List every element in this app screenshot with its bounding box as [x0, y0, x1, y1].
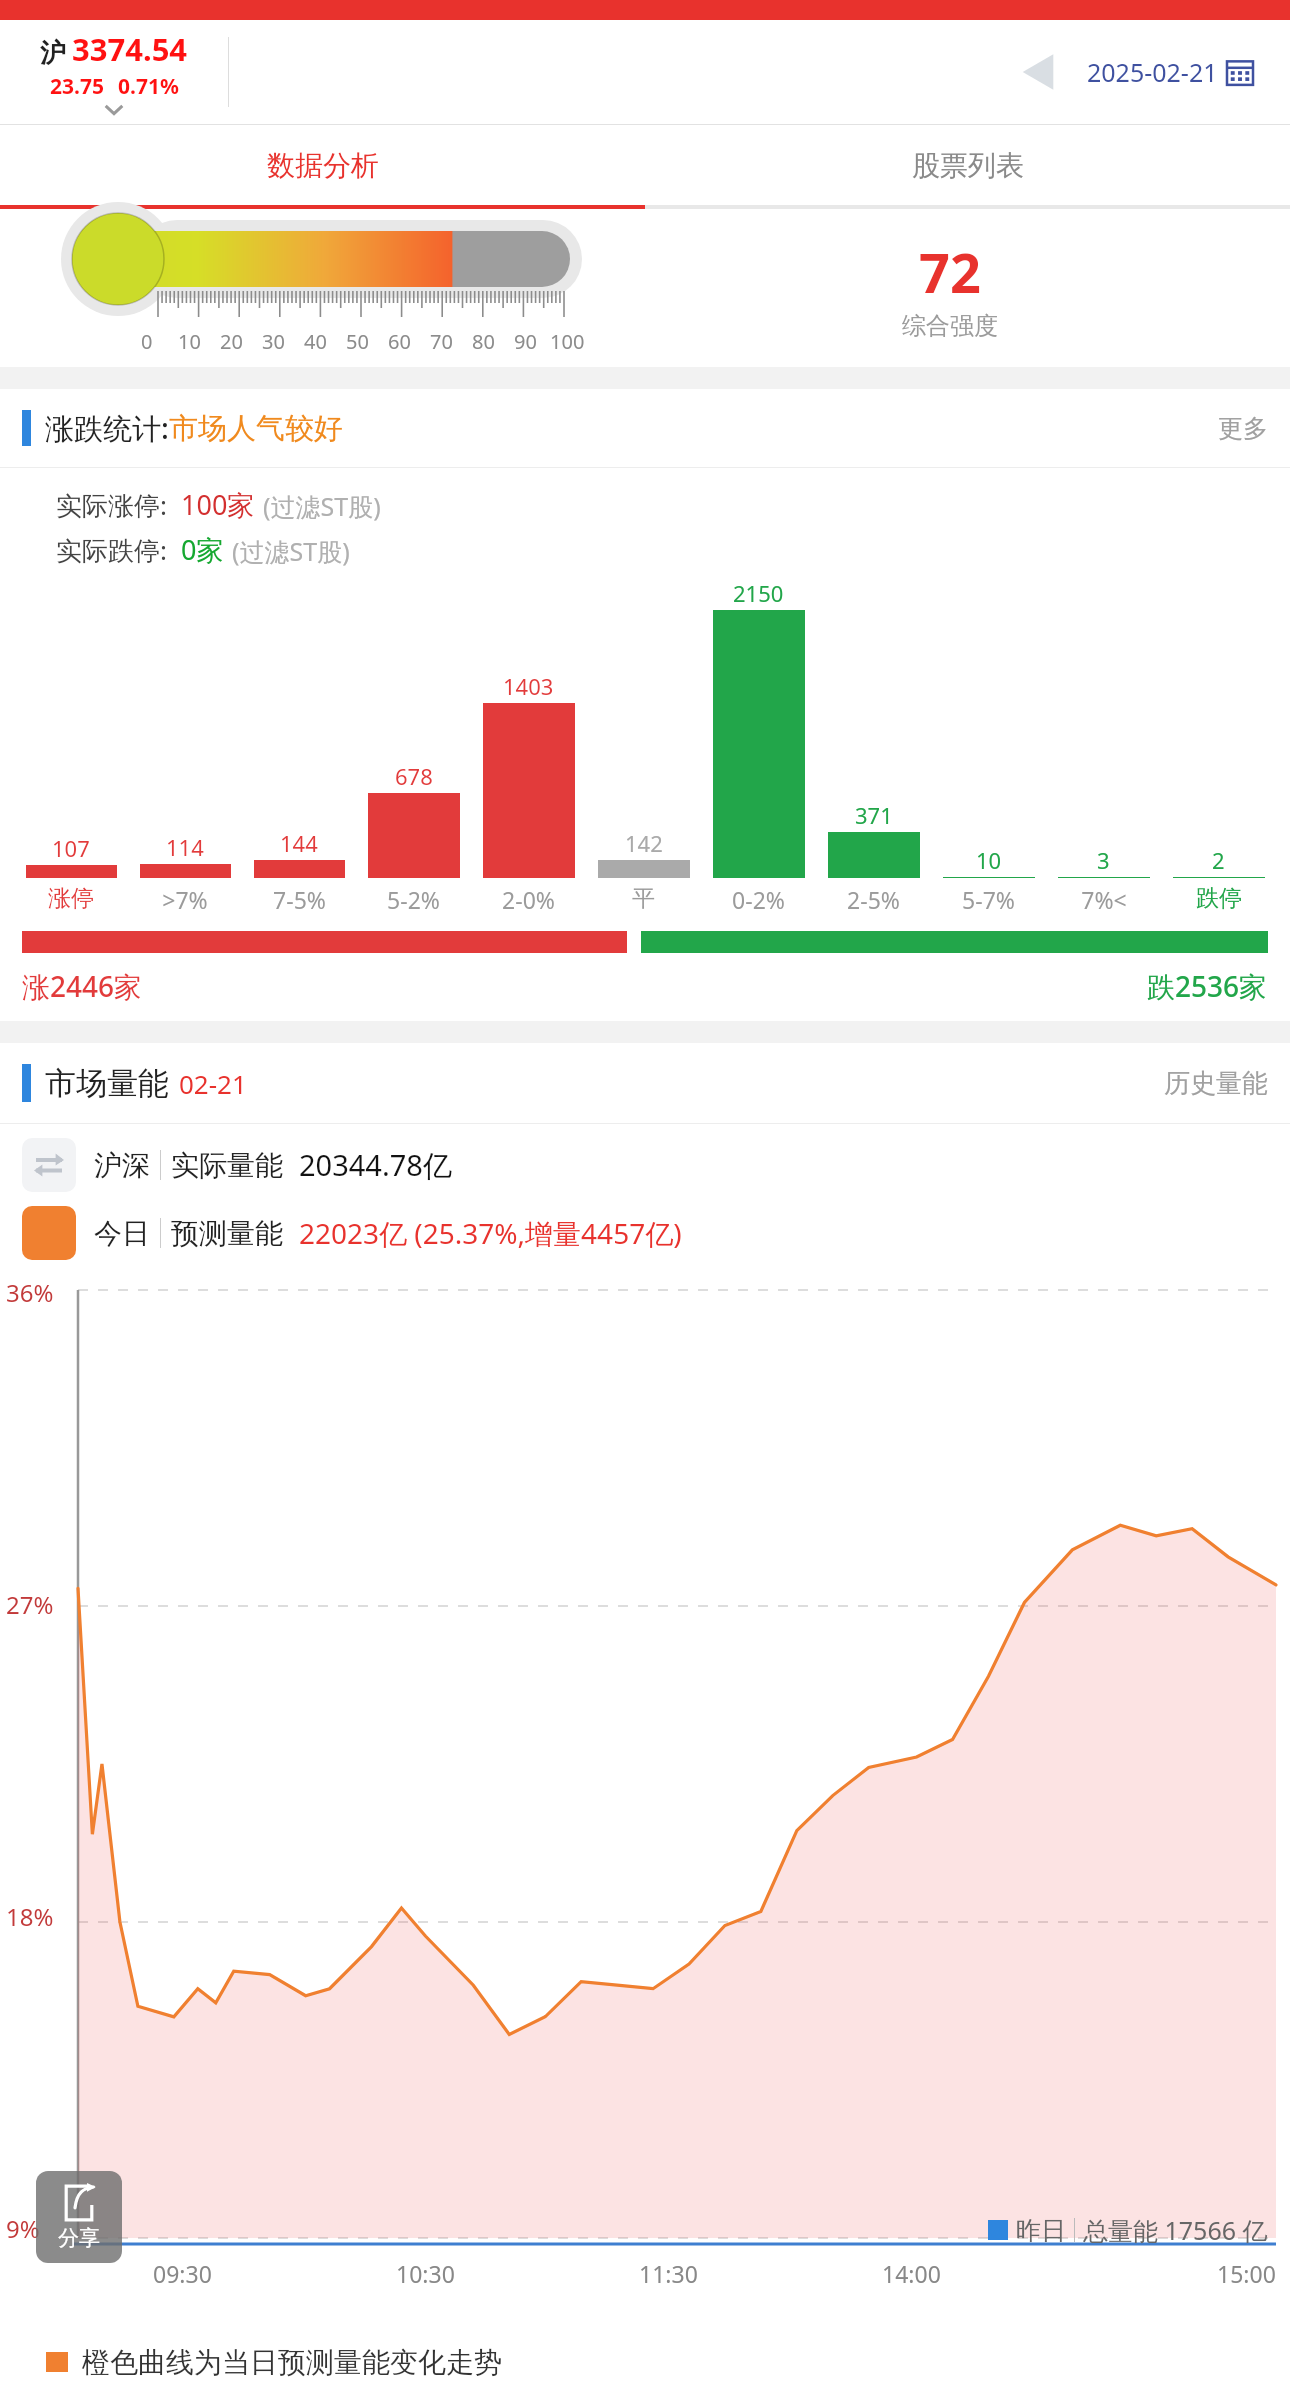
staticText: 今日	[94, 1216, 150, 1251]
staticText: >7%	[162, 884, 208, 915]
staticText: 114	[166, 832, 204, 862]
button[interactable]: Previous day	[1021, 51, 1055, 93]
staticText: 市场人气较好	[169, 410, 343, 447]
staticText: 2-0%	[502, 884, 555, 915]
staticText: 分享	[58, 2225, 100, 2251]
staticText: 18%	[6, 1900, 54, 1933]
staticText: 09:30	[153, 2258, 212, 2289]
staticText: 11:30	[639, 2258, 698, 2289]
button[interactable]: 分享 Share	[36, 2171, 122, 2263]
staticText: 22023亿 (25.37%,增量4457亿)	[299, 1214, 682, 1252]
button[interactable]: 股票列表	[645, 125, 1290, 205]
staticText: 3	[1097, 845, 1110, 875]
staticText: 40	[304, 328, 327, 355]
staticText: 10:30	[396, 2258, 455, 2289]
staticText: 70	[430, 328, 453, 355]
staticText: 144	[280, 828, 318, 858]
button[interactable]: 2025-02-21	[1073, 48, 1268, 96]
staticText: 10	[976, 845, 1002, 875]
staticText: 股票列表	[912, 148, 1024, 183]
staticText: 15:00	[1217, 2258, 1276, 2289]
staticText: 沪	[40, 37, 66, 70]
staticText: 27%	[6, 1588, 54, 1621]
staticText: 总量能 17566 亿	[1083, 2213, 1268, 2247]
staticText: 橙色曲线为当日预测量能变化走势	[82, 2345, 502, 2380]
staticText: 涨2446家	[22, 967, 143, 1005]
button[interactable]: 涨跌统计:	[0, 389, 1290, 467]
staticText: 60	[388, 328, 411, 355]
staticText: 0	[141, 328, 153, 355]
staticText: 371	[855, 800, 893, 830]
staticText: 7%<	[1081, 884, 1127, 915]
button[interactable]: 数据分析	[0, 125, 645, 205]
staticText: 5-2%	[387, 884, 440, 915]
staticText: 1403	[503, 671, 554, 701]
staticText: 更多	[1218, 413, 1268, 444]
staticText: 5-7%	[962, 884, 1015, 915]
staticText: 02-21	[179, 1066, 247, 1101]
staticText: 3374.54	[72, 28, 188, 70]
staticText: 142	[625, 828, 663, 858]
staticText: 实际跌停:	[56, 532, 167, 568]
staticText: 2025-02-21	[1087, 55, 1218, 89]
staticText: 2-5%	[847, 884, 900, 915]
staticText: 0家	[181, 531, 224, 568]
staticText: 23.75	[50, 72, 104, 101]
staticText: 涨停	[48, 884, 94, 913]
button[interactable]: 市场量能	[0, 1043, 1290, 1123]
staticText: 10	[178, 328, 201, 355]
staticText: 数据分析	[267, 148, 379, 183]
staticText: 9%	[6, 2212, 40, 2245]
staticText: 实际涨停:	[56, 487, 167, 523]
staticText: 80	[472, 328, 495, 355]
staticText: 678	[395, 761, 433, 791]
staticText: 20	[220, 328, 243, 355]
staticText: 100	[550, 328, 585, 355]
staticText: 72	[919, 235, 981, 309]
staticText: 107	[52, 833, 90, 863]
staticText: 90	[514, 328, 537, 355]
staticText: 历史量能	[1164, 1067, 1268, 1100]
staticText: 14:00	[882, 2258, 941, 2289]
staticText: 50	[346, 328, 369, 355]
button[interactable]: 沪	[0, 20, 228, 124]
staticText: 市场量能	[45, 1064, 169, 1103]
staticText: (过滤ST股)	[263, 489, 381, 523]
staticText: 2150	[733, 578, 784, 608]
staticText: 2	[1212, 845, 1225, 875]
staticText: 跌停	[1196, 884, 1242, 913]
staticText: 100家	[181, 486, 255, 523]
staticText: 平	[632, 884, 655, 913]
staticText: 综合强度	[902, 311, 998, 341]
staticText: 昨日	[1016, 2215, 1066, 2246]
staticText: 沪深	[94, 1148, 150, 1183]
staticText: 0.71%	[118, 72, 179, 101]
staticText: 30	[262, 328, 285, 355]
staticText: 7-5%	[273, 884, 326, 915]
staticText: 跌2536家	[1147, 967, 1268, 1005]
staticText: 实际量能	[171, 1148, 283, 1183]
staticText: (过滤ST股)	[232, 534, 350, 568]
staticText: 36%	[6, 1276, 54, 1309]
staticText: 预测量能	[171, 1216, 283, 1251]
staticText: 涨跌统计:	[45, 408, 169, 448]
staticText: 0-2%	[732, 884, 785, 915]
staticText: 20344.78亿	[299, 1145, 452, 1185]
